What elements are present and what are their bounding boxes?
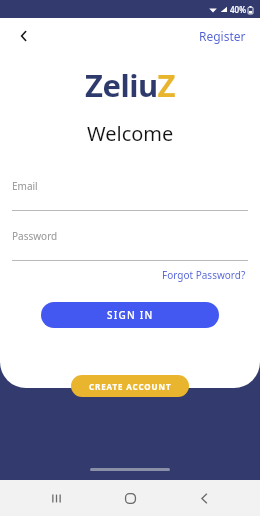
button[interactable]: Back [8, 20, 40, 52]
button[interactable]: SIGN IN [41, 302, 219, 328]
button[interactable]: Email [0, 179, 260, 211]
staticText: ZeliuZ [85, 64, 176, 106]
button[interactable]: Recent apps [38, 480, 74, 516]
button[interactable]: Home [112, 480, 148, 516]
button[interactable]: CREATE ACCOUNT [71, 375, 189, 397]
staticText: 40% [230, 4, 246, 15]
staticText: Welcome [87, 120, 174, 147]
staticText: Password [12, 229, 58, 243]
button[interactable]: Register [191, 23, 254, 49]
button[interactable]: Forgot Password? [158, 265, 250, 285]
staticText: SIGN IN [107, 308, 154, 322]
staticText: CREATE ACCOUNT [89, 381, 172, 392]
staticText: Email [12, 179, 38, 193]
button[interactable]: Password [0, 229, 260, 261]
button[interactable]: Back [186, 480, 222, 516]
staticText: Forgot Password? [162, 268, 246, 282]
staticText: Register [199, 28, 246, 44]
